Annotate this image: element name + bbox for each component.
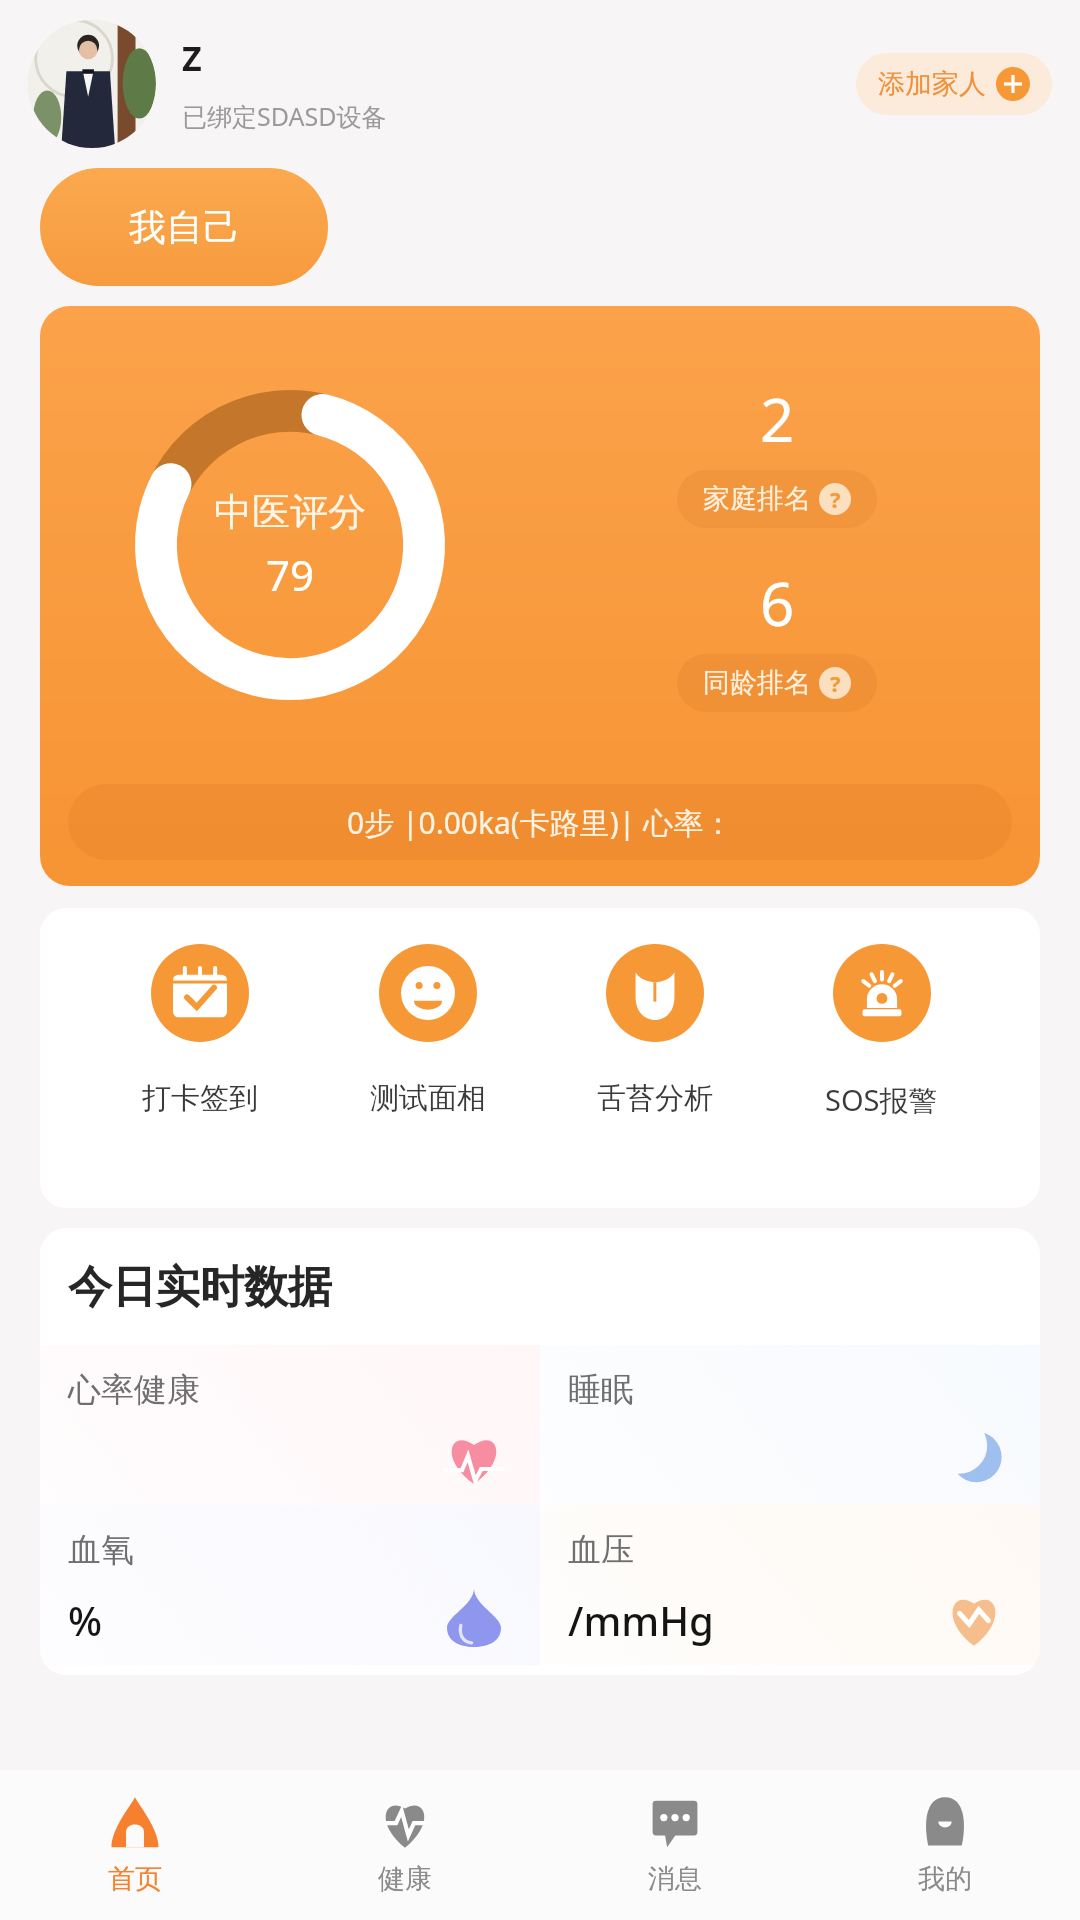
staticText: 我的 — [918, 1862, 972, 1896]
button[interactable]: 心率健康 — [40, 1345, 540, 1505]
staticText: 79 — [266, 546, 315, 603]
button[interactable]: 我自己 — [40, 168, 328, 286]
button[interactable]: 中医评分 — [40, 306, 1040, 886]
staticText: 消息 — [648, 1862, 702, 1896]
button[interactable]: 首页 — [0, 1788, 270, 1902]
staticText: 家庭排名 — [703, 482, 811, 516]
staticText: 心率健康 — [68, 1369, 200, 1411]
staticText: 6 — [760, 562, 795, 644]
button[interactable]: 打卡签到 — [132, 944, 268, 1117]
button[interactable]: 健康 — [270, 1788, 540, 1902]
staticText: ? — [830, 668, 841, 698]
staticText: 健康 — [378, 1862, 432, 1896]
button[interactable]: 我的 — [810, 1788, 1080, 1902]
button[interactable]: 0步 |0.00ka(卡路里)| 心率： — [68, 784, 1012, 860]
staticText: 今日实时数据 — [68, 1260, 332, 1315]
staticText: 血氧 — [68, 1529, 134, 1571]
button[interactable]: 舌苔分析 — [587, 944, 723, 1117]
button[interactable]: SOS报警 — [815, 944, 948, 1120]
staticText: 同龄排名 — [703, 666, 811, 700]
staticText: 打卡签到 — [142, 1080, 258, 1117]
staticText: 舌苔分析 — [597, 1080, 713, 1117]
staticText: 睡眠 — [568, 1369, 634, 1411]
button[interactable]: 血氧 — [40, 1505, 540, 1665]
staticText: 血压 — [568, 1529, 634, 1571]
staticText: Z — [182, 35, 202, 81]
staticText: 添加家人 — [878, 67, 986, 101]
button[interactable]: 家庭排名 — [677, 470, 877, 528]
staticText: 2 — [760, 378, 795, 460]
button[interactable]: 同龄排名 — [677, 654, 877, 712]
staticText: 0步 |0.00ka(卡路里)| 心率： — [347, 802, 734, 843]
staticText: ? — [830, 484, 841, 514]
staticText: 我自己 — [129, 204, 240, 251]
button[interactable]: 测试面相 — [360, 944, 496, 1117]
button[interactable]: 消息 — [540, 1788, 810, 1902]
staticText: SOS报警 — [825, 1080, 938, 1120]
button[interactable]: 添加家人 — [856, 53, 1052, 115]
staticText: % — [68, 1593, 103, 1647]
staticText: 已绑定SDASD设备 — [182, 99, 387, 133]
button[interactable]: 睡眠 — [540, 1345, 1040, 1505]
staticText: /mmHg — [568, 1593, 714, 1647]
staticText: 测试面相 — [370, 1080, 486, 1117]
staticText: 首页 — [108, 1862, 162, 1896]
button[interactable]: 血压 — [540, 1505, 1040, 1665]
staticText: 中医评分 — [214, 488, 366, 536]
